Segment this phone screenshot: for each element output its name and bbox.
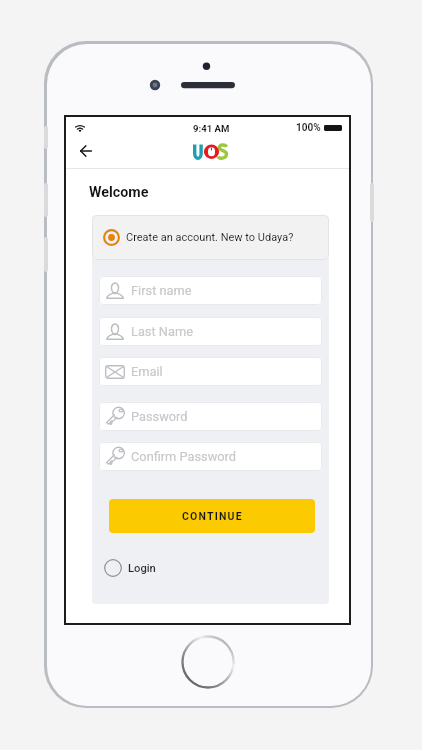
staticText: Welcome bbox=[89, 184, 149, 201]
staticText: Login bbox=[128, 562, 156, 575]
staticText: 100% bbox=[296, 122, 321, 134]
button[interactable]: Confirm Password bbox=[99, 442, 322, 471]
button[interactable]: Login bbox=[104, 559, 156, 577]
staticText: Confirm Password bbox=[131, 449, 237, 464]
button[interactable]: Password bbox=[99, 402, 322, 431]
button[interactable]: CONTINUE bbox=[109, 499, 315, 533]
staticText: Create an account. New to Udaya? bbox=[126, 231, 294, 244]
button[interactable]: Back bbox=[72, 137, 100, 165]
button[interactable]: Create an account. New to Udaya? bbox=[92, 215, 329, 260]
button[interactable]: Email bbox=[99, 357, 322, 386]
staticText: 9:41 AM bbox=[193, 123, 230, 134]
staticText: CONTINUE bbox=[182, 510, 243, 522]
button[interactable]: First name bbox=[99, 276, 322, 305]
button[interactable]: Last Name bbox=[99, 317, 322, 346]
staticText: Last Name bbox=[131, 324, 193, 339]
staticText: Password bbox=[131, 409, 188, 424]
staticText: Email bbox=[131, 364, 163, 379]
staticText: First name bbox=[131, 283, 192, 298]
